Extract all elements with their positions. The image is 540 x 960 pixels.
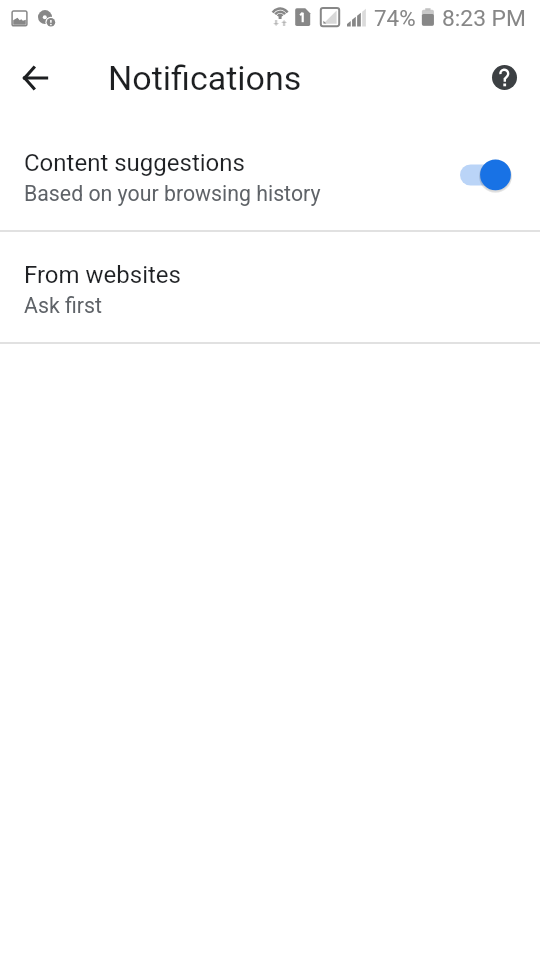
staticText: Notifications <box>108 58 302 98</box>
staticText: 74% <box>374 5 416 31</box>
button[interactable]: Help <box>480 53 528 101</box>
staticText: Ask first <box>24 293 102 318</box>
button[interactable]: Content suggestions <box>0 120 540 230</box>
button[interactable]: From websites <box>0 232 540 342</box>
button[interactable]: Content suggestions toggle <box>452 154 518 196</box>
staticText: Based on your browsing history <box>24 181 321 206</box>
staticText: 8:23 PM <box>442 5 526 32</box>
staticText: Content suggestions <box>24 149 245 177</box>
button[interactable]: Navigate up <box>11 54 59 102</box>
staticText: From websites <box>24 261 181 289</box>
